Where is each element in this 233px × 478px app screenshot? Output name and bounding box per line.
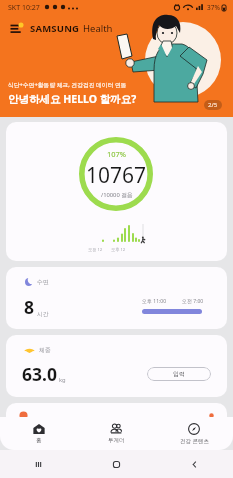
staticText: 오후 11:00 [142, 298, 167, 305]
staticText: SAMSUNG [30, 22, 80, 35]
staticText: 37% [207, 3, 220, 12]
staticText: Health [83, 22, 113, 35]
staticText: 8 [24, 295, 35, 319]
staticText: 홈 [36, 437, 42, 444]
button[interactable]: 107% [6, 122, 227, 261]
staticText: /10000 걸음 [101, 191, 133, 199]
staticText: 2/5 [208, 101, 218, 109]
staticText: 63.0 [22, 362, 57, 386]
button[interactable] [6, 403, 227, 417]
button[interactable]: 입력 [147, 367, 211, 381]
staticText: 안녕하세요 HELLO 할까요? [8, 92, 137, 106]
button[interactable]: 투게더 [77, 417, 155, 450]
button[interactable]: 수면 [6, 267, 227, 329]
staticText: 오후 12 [111, 247, 126, 253]
staticText: 식단+수면+활동량 체크, 건강검진 데이터 연동 [8, 81, 127, 89]
staticText: 시간 [37, 310, 49, 317]
button[interactable]: Recents [0, 450, 77, 478]
staticText: kg [59, 376, 66, 384]
staticText: 오전 7:00 [182, 298, 204, 305]
button[interactable]: 체중 [6, 335, 227, 397]
staticText: 체중 [39, 346, 51, 354]
staticText: 투게더 [108, 437, 125, 444]
staticText: 107% [107, 149, 127, 159]
staticText: SKT 10:27 [8, 3, 40, 13]
button[interactable]: Home [77, 450, 155, 478]
button[interactable]: Menu [9, 21, 24, 36]
staticText: 입력 [173, 370, 185, 378]
staticText: 10767 [86, 161, 147, 190]
staticText: 오전 12 [88, 247, 103, 253]
button[interactable]: 홈 [0, 417, 77, 450]
button[interactable]: Back [155, 450, 233, 478]
staticText: 수면 [37, 278, 49, 286]
button[interactable]: 건강 콘텐츠 [155, 417, 233, 450]
staticText: 건강 콘텐츠 [180, 437, 209, 445]
button[interactable]: 2/5 [204, 100, 222, 110]
